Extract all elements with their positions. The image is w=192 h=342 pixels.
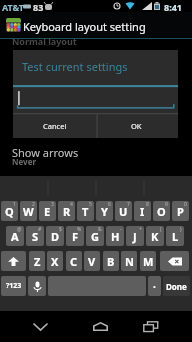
staticText: Cancel xyxy=(43,121,67,131)
staticText: 0 xyxy=(184,201,187,208)
staticText: Show arrows xyxy=(12,145,79,160)
staticText: D xyxy=(51,229,60,244)
staticText: G xyxy=(91,229,99,244)
staticText: $ xyxy=(59,226,62,233)
staticText: Normal layout xyxy=(12,35,77,47)
button[interactable]: Voice input xyxy=(28,276,46,296)
staticText: S xyxy=(32,229,39,244)
staticText: @ xyxy=(17,226,22,233)
button[interactable]: R xyxy=(58,201,75,221)
staticText: O xyxy=(157,204,166,219)
staticText: ( xyxy=(160,226,162,233)
button[interactable]: W xyxy=(20,201,37,221)
staticText: 83 xyxy=(33,1,44,13)
button[interactable]: Q xyxy=(1,201,18,221)
button[interactable]: E xyxy=(39,201,56,221)
staticText: 1 xyxy=(13,201,16,208)
button[interactable]: ?123 xyxy=(1,276,26,296)
button[interactable]: U xyxy=(115,201,132,221)
button[interactable]: Shift xyxy=(1,251,26,271)
button[interactable]: H xyxy=(106,226,124,246)
button[interactable]: Delete xyxy=(160,251,189,271)
staticText: & xyxy=(98,226,102,233)
button[interactable]: F xyxy=(66,226,84,246)
button[interactable]: O xyxy=(153,201,170,221)
staticText: - xyxy=(120,226,122,233)
staticText: V xyxy=(88,254,96,269)
staticText: C xyxy=(70,254,78,269)
button[interactable]: K xyxy=(146,226,164,246)
button[interactable]: P xyxy=(172,201,189,221)
staticText: 7 xyxy=(127,201,130,208)
staticText: + xyxy=(139,226,142,233)
staticText: 4 xyxy=(70,201,73,208)
staticText: AT&T xyxy=(2,1,25,13)
button[interactable]: Cancel xyxy=(13,114,96,138)
staticText: % xyxy=(77,226,82,233)
button[interactable]: C xyxy=(66,251,82,271)
button[interactable]: N xyxy=(121,251,137,271)
staticText: Y xyxy=(101,204,108,219)
staticText: T xyxy=(82,204,89,219)
staticText: B xyxy=(107,254,115,269)
staticText: N xyxy=(125,254,134,269)
staticText: U xyxy=(119,204,128,219)
staticText: 2 xyxy=(32,201,35,208)
staticText: A xyxy=(11,229,19,244)
button[interactable]: T xyxy=(77,201,94,221)
button[interactable]: Done xyxy=(163,276,190,296)
button[interactable]: J xyxy=(126,226,144,246)
staticText: W xyxy=(23,204,34,219)
staticText: H xyxy=(111,229,120,244)
staticText: R xyxy=(63,204,71,219)
staticText: Done xyxy=(166,281,187,292)
button[interactable]: A xyxy=(6,226,24,246)
staticText: Q xyxy=(5,204,14,219)
button[interactable]: M xyxy=(140,251,156,271)
staticText: K xyxy=(151,229,159,244)
staticText: I xyxy=(140,204,145,219)
button[interactable]: Y xyxy=(96,201,113,221)
staticText: Test current settings xyxy=(22,59,128,74)
staticText: E xyxy=(44,204,51,219)
button[interactable]: OK xyxy=(96,114,177,138)
staticText: 5 xyxy=(89,201,92,208)
staticText: OK xyxy=(131,121,142,131)
staticText: Keyboard layout setting xyxy=(23,19,146,34)
button[interactable]: . xyxy=(148,276,161,296)
staticText: 8 xyxy=(146,201,149,208)
button[interactable]: I xyxy=(134,201,151,221)
staticText: 3 xyxy=(51,201,54,208)
button[interactable]: X xyxy=(47,251,63,271)
staticText: L xyxy=(172,229,179,244)
button[interactable]: S xyxy=(26,226,44,246)
staticText: ?123 xyxy=(6,281,22,291)
staticText: Never xyxy=(12,156,37,167)
button[interactable]: Z xyxy=(29,251,45,271)
staticText: J xyxy=(133,229,137,244)
staticText: Z xyxy=(34,254,41,269)
button[interactable]: D xyxy=(46,226,64,246)
staticText: . xyxy=(153,277,156,291)
staticText: # xyxy=(38,226,42,233)
staticText: P xyxy=(177,204,184,219)
staticText: 9 xyxy=(165,201,168,208)
button[interactable]: L xyxy=(166,226,184,246)
staticText: ) xyxy=(180,226,182,233)
staticText: X xyxy=(51,254,59,269)
staticText: F xyxy=(72,229,79,244)
button[interactable]: Home xyxy=(84,311,116,342)
staticText: 6 xyxy=(108,201,111,208)
button[interactable]: V xyxy=(84,251,100,271)
staticText: 8:41 xyxy=(164,1,182,13)
button[interactable]: Back xyxy=(24,311,56,342)
button[interactable]: G xyxy=(86,226,104,246)
button[interactable]: Recents xyxy=(134,311,166,342)
button[interactable]: B xyxy=(103,251,119,271)
staticText: M xyxy=(143,254,154,269)
